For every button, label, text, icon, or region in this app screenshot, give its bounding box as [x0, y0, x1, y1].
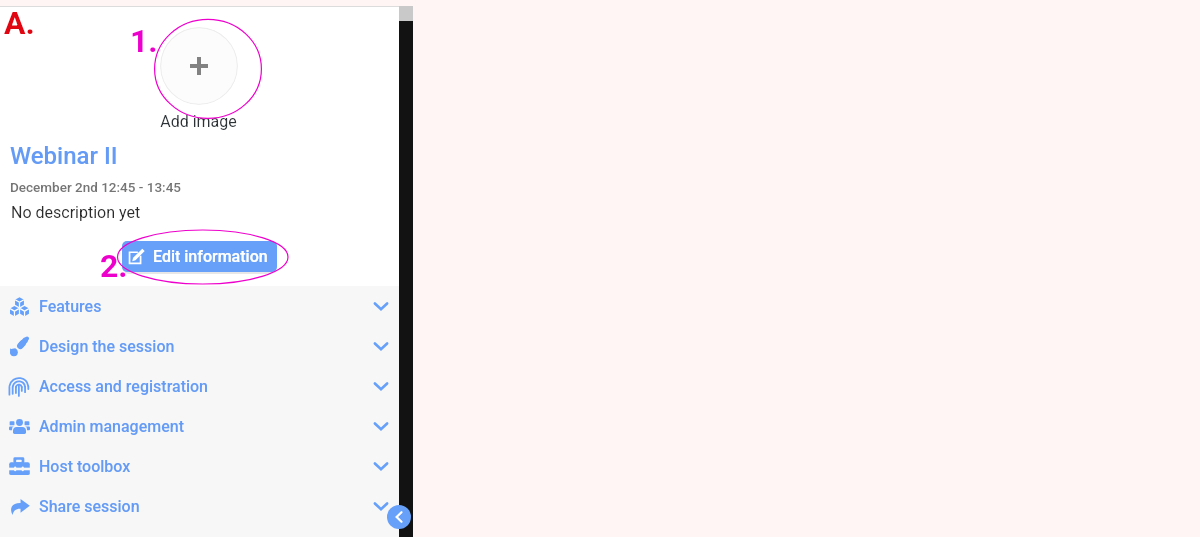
- button[interactable]: Collapse panel: [387, 505, 411, 529]
- staticText: Host toolbox: [39, 457, 131, 476]
- staticText: 1.: [130, 22, 158, 60]
- button[interactable]: Add image: [160, 27, 238, 105]
- button[interactable]: Admin management: [0, 406, 399, 446]
- button[interactable]: Host toolbox: [0, 446, 399, 486]
- staticText: Design the session: [39, 337, 175, 356]
- staticText: Admin management: [39, 417, 184, 436]
- staticText: No description yet: [11, 203, 141, 222]
- button[interactable]: Share session: [0, 486, 399, 526]
- staticText: Features: [39, 297, 102, 316]
- button[interactable]: Access and registration: [0, 366, 399, 406]
- button[interactable]: Features: [0, 286, 399, 326]
- staticText: Access and registration: [39, 377, 209, 396]
- staticText: A.: [4, 4, 35, 42]
- staticText: December 2nd 12:45 - 13:45: [10, 179, 181, 195]
- button[interactable]: Edit information: [122, 241, 277, 272]
- staticText: 2.: [100, 247, 128, 285]
- staticText: Share session: [39, 497, 140, 516]
- staticText: Edit information: [153, 247, 268, 266]
- staticText: Add image: [0, 112, 398, 131]
- button[interactable]: Design the session: [0, 326, 399, 366]
- staticText: Webinar II: [10, 142, 118, 170]
